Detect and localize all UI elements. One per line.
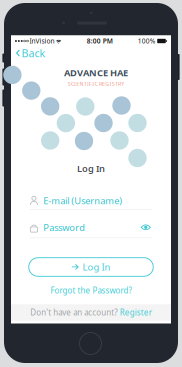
staticText: Log In bbox=[82, 261, 110, 273]
button[interactable]: Back bbox=[11, 46, 51, 59]
staticText: InVision bbox=[29, 37, 54, 45]
staticText: Back bbox=[21, 46, 45, 60]
button[interactable]: Forgot the Password? bbox=[47, 282, 134, 299]
button[interactable]: Show password bbox=[139, 221, 152, 234]
staticText: Password bbox=[43, 221, 85, 233]
staticText: Don't have an account? bbox=[30, 307, 117, 318]
button[interactable]: E-mail (Username) bbox=[30, 192, 152, 210]
staticText: SCIENTIFIC REGISTRY bbox=[68, 80, 124, 87]
staticText: 8:00 PM bbox=[87, 37, 113, 45]
staticText: ADVANCE HAE bbox=[64, 66, 128, 79]
staticText: 100% bbox=[138, 37, 156, 45]
staticText: Forgot the Password? bbox=[50, 285, 131, 296]
button[interactable]: Don't have an account? bbox=[11, 304, 171, 321]
staticText: Log In bbox=[77, 162, 105, 175]
staticText: Register bbox=[120, 307, 152, 318]
button[interactable]: Log In bbox=[29, 258, 153, 276]
staticText: E-mail (Username) bbox=[43, 194, 122, 207]
